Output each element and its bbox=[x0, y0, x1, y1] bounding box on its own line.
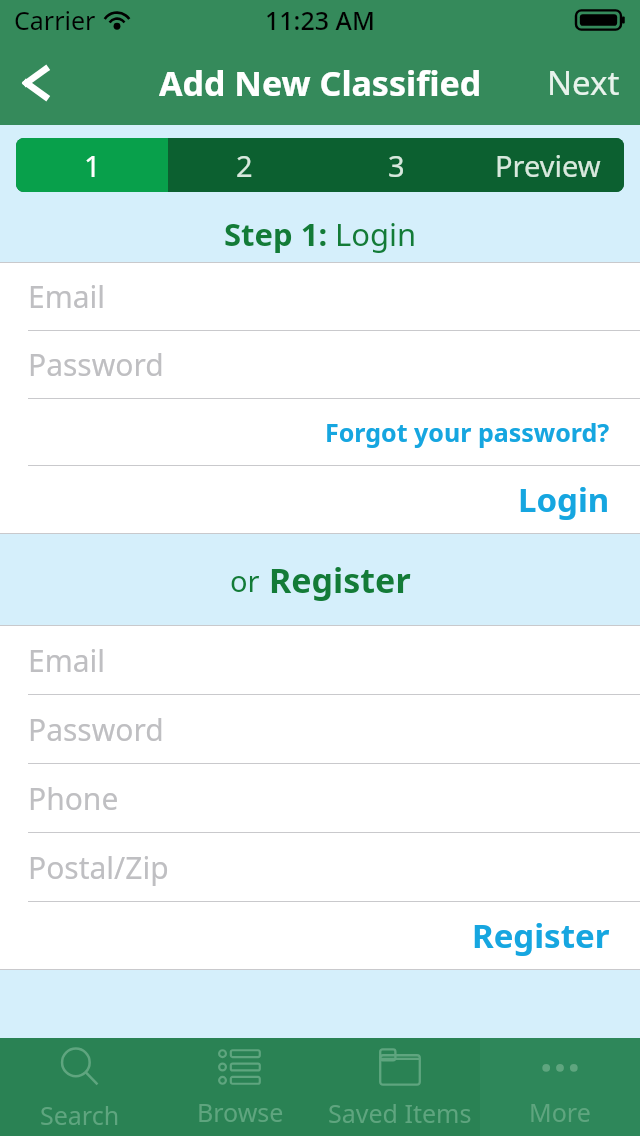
staticText: Password bbox=[28, 709, 164, 750]
staticText: Postal/Zip bbox=[28, 847, 169, 888]
staticText: Password bbox=[28, 344, 164, 385]
staticText: Forgot your password? bbox=[325, 415, 610, 449]
staticText: Step 1: bbox=[224, 213, 328, 255]
button[interactable]: More bbox=[480, 1038, 640, 1136]
staticText: Add New Classified bbox=[159, 60, 482, 106]
staticText: 1 bbox=[84, 146, 101, 185]
button[interactable]: Login bbox=[0, 466, 640, 533]
staticText: 3 bbox=[388, 146, 405, 185]
button[interactable]: Next bbox=[527, 40, 640, 125]
button[interactable]: 3 bbox=[320, 138, 472, 192]
staticText: Login bbox=[518, 477, 610, 522]
button[interactable]: Register bbox=[0, 902, 640, 969]
button[interactable]: Browse bbox=[160, 1038, 320, 1136]
staticText: Email bbox=[28, 640, 106, 681]
staticText: More bbox=[529, 1095, 591, 1129]
staticText: Register bbox=[472, 913, 610, 958]
staticText: Search bbox=[40, 1098, 120, 1132]
staticText: Browse bbox=[197, 1095, 284, 1129]
staticText: Preview bbox=[495, 146, 601, 185]
staticText: Saved Items bbox=[328, 1096, 472, 1130]
staticText: Phone bbox=[28, 778, 119, 819]
staticText: or bbox=[230, 561, 260, 600]
button[interactable]: Password bbox=[0, 695, 640, 763]
button[interactable]: Email bbox=[0, 626, 640, 694]
button[interactable]: Search bbox=[0, 1038, 160, 1136]
button[interactable]: 2 bbox=[168, 138, 320, 192]
button[interactable]: 1 bbox=[16, 138, 168, 192]
button[interactable]: Saved Items bbox=[320, 1038, 480, 1136]
button[interactable]: Password bbox=[0, 331, 640, 398]
staticText: 11:23 AM bbox=[265, 3, 375, 37]
staticText: Carrier bbox=[14, 3, 96, 37]
staticText: Next bbox=[547, 60, 620, 105]
button[interactable]: Forgot your password? bbox=[0, 399, 640, 465]
button[interactable]: Email bbox=[0, 263, 640, 330]
staticText: Email bbox=[28, 276, 106, 317]
staticText: Login bbox=[335, 213, 417, 255]
button[interactable]: Preview bbox=[472, 138, 624, 192]
button[interactable]: Back bbox=[0, 40, 72, 125]
staticText: 2 bbox=[236, 146, 253, 185]
button[interactable]: Postal/Zip bbox=[0, 833, 640, 901]
button[interactable]: Phone bbox=[0, 764, 640, 832]
staticText: Register bbox=[269, 557, 411, 603]
